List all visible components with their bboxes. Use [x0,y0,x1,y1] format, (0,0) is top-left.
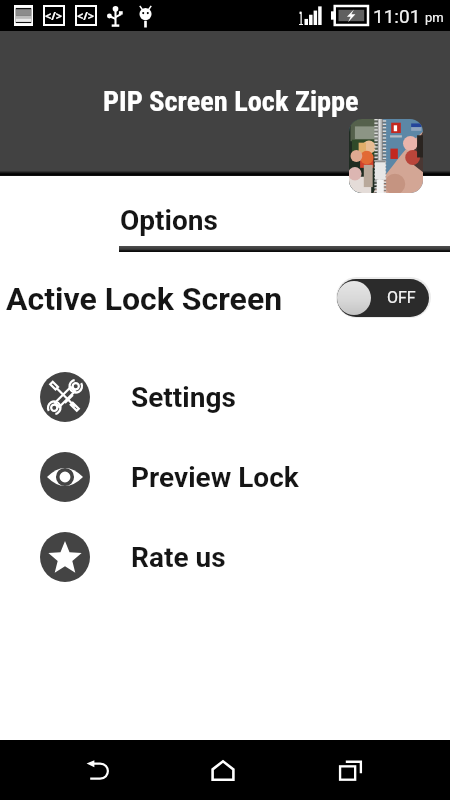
button[interactable]: OFF [335,276,431,319]
button[interactable]: Settings [0,360,450,434]
staticText: PIP Screen Lock Zippe [103,85,359,118]
staticText: pm [425,10,444,25]
button[interactable]: Home [185,740,261,800]
button[interactable]: Rate us [0,520,450,594]
button[interactable]: Preview Lock [0,440,450,514]
button[interactable]: Back [60,740,136,800]
staticText: Options [120,204,218,237]
staticText: Rate us [131,541,226,574]
staticText: Settings [131,381,236,414]
staticText: OFF [387,288,416,307]
button[interactable]: Recent apps [313,740,389,800]
staticText: 11:01 [373,5,421,27]
staticText: </> [45,8,63,23]
staticText: Preview Lock [131,461,299,494]
staticText: </> [77,8,95,23]
staticText: Active Lock Screen [6,280,283,318]
